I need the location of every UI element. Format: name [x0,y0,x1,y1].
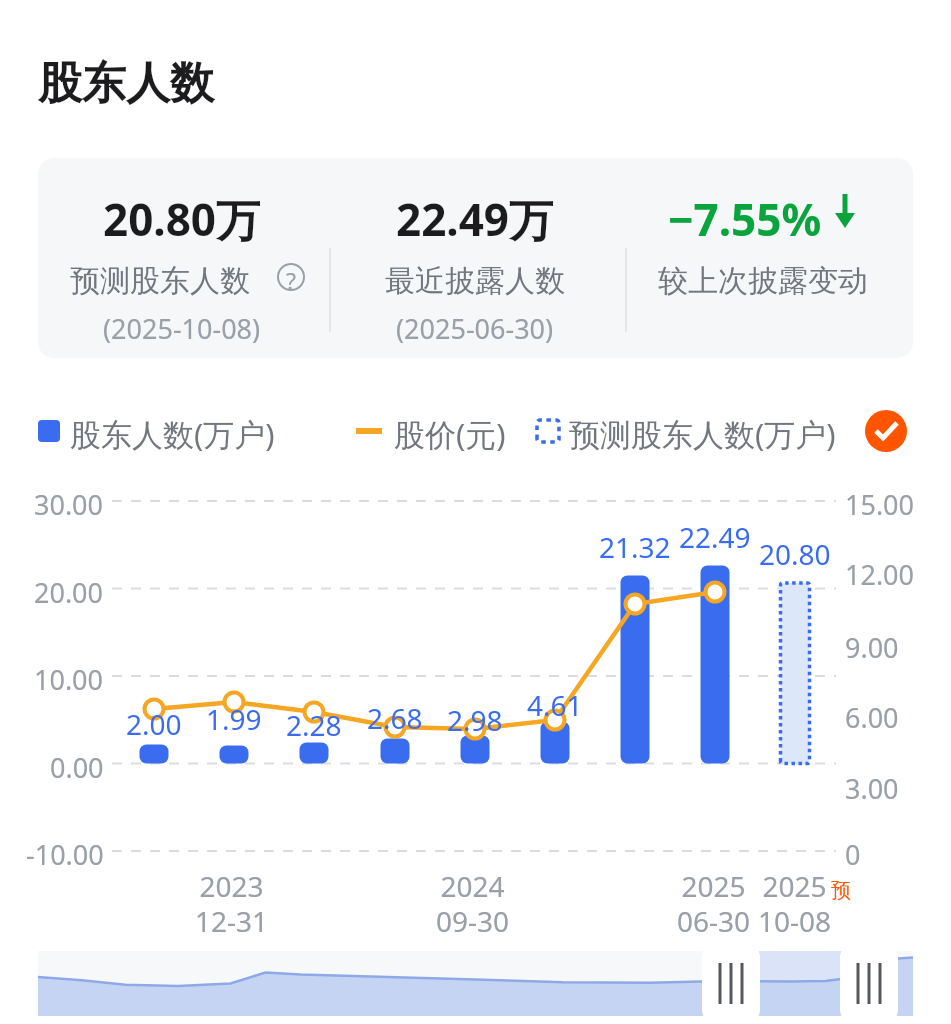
button[interactable]: 预测股东人数说明 [12,49,100,62]
button[interactable]: 左侧范围手柄 [226,302,245,326]
